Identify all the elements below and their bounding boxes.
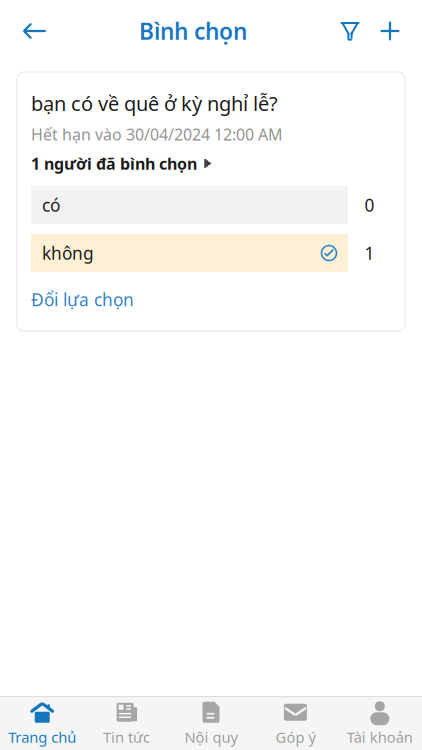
button[interactable]: Filter (330, 9, 370, 53)
button[interactable]: Nội quy (169, 697, 253, 750)
staticText: Góp ý (275, 727, 315, 747)
button[interactable]: Trang chủ (0, 697, 84, 750)
staticText: Nội quy (184, 727, 237, 747)
staticText: 1 (364, 241, 374, 264)
button[interactable]: Back (12, 9, 56, 53)
staticText: Tài khoản (347, 727, 413, 747)
button[interactable]: Tin tức (84, 697, 169, 750)
button[interactable]: có (31, 186, 391, 224)
staticText: không (42, 241, 94, 264)
button[interactable]: không (31, 234, 391, 272)
staticText: Bình chọn (139, 16, 247, 46)
button[interactable]: Góp ý (253, 697, 338, 750)
staticText: Trang chủ (8, 727, 76, 747)
button[interactable]: Đổi lựa chọn (31, 284, 134, 315)
staticText: Tin tức (103, 727, 150, 747)
staticText: có (42, 193, 60, 216)
staticText: 0 (364, 193, 374, 216)
staticText: Đổi lựa chọn (31, 288, 134, 311)
button[interactable]: 1 người đã bình chọn (31, 153, 211, 174)
staticText: bạn có về quê ở kỳ nghỉ lễ? (31, 90, 278, 117)
staticText: 1 người đã bình chọn (31, 153, 197, 174)
button[interactable]: Add (370, 9, 410, 53)
button[interactable]: Tài khoản (338, 697, 422, 750)
staticText: Hết hạn vào 30/04/2024 12:00 AM (31, 124, 283, 145)
